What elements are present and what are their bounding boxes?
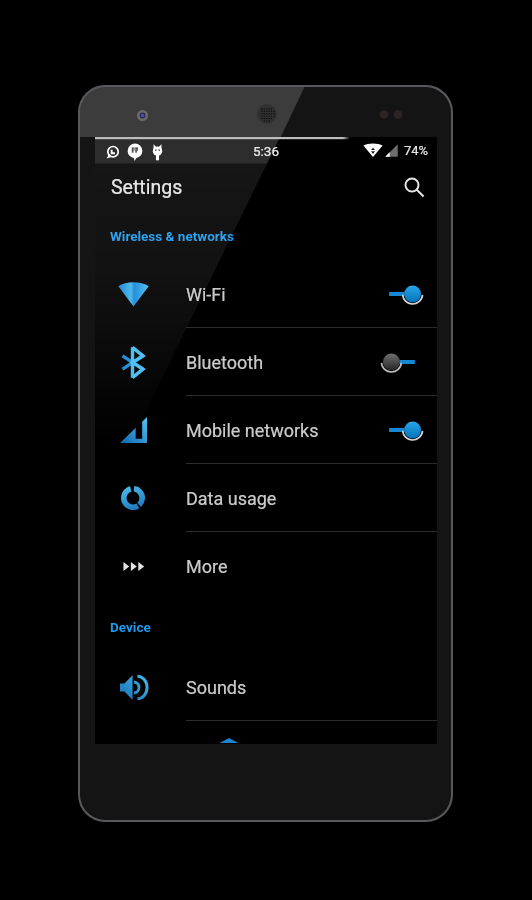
button[interactable]: Toggle Bluetooth <box>383 348 421 376</box>
staticText: Sounds <box>186 677 247 698</box>
button[interactable]: Mobile networks <box>95 396 437 464</box>
button[interactable]: Wi-Fi <box>95 260 437 328</box>
staticText: Wi-Fi <box>186 284 226 305</box>
staticText: Wireless & networks <box>110 228 234 244</box>
button[interactable]: Toggle Mobile networks <box>383 416 421 444</box>
staticText: 5:36 <box>253 143 280 159</box>
staticText: Data usage <box>186 488 277 509</box>
staticText: Device <box>110 619 151 635</box>
button[interactable]: Toggle Wi-Fi <box>383 280 421 308</box>
staticText: Settings <box>111 176 183 199</box>
button[interactable]: More <box>95 532 437 600</box>
staticText: Mobile networks <box>186 420 319 441</box>
button[interactable]: Bluetooth <box>95 328 437 396</box>
staticText: Bluetooth <box>186 352 264 373</box>
staticText: 74% <box>404 143 429 158</box>
button[interactable]: Data usage <box>95 464 437 532</box>
staticText: More <box>186 556 228 577</box>
button[interactable]: Search <box>391 164 437 210</box>
button[interactable]: Sounds <box>95 653 437 721</box>
